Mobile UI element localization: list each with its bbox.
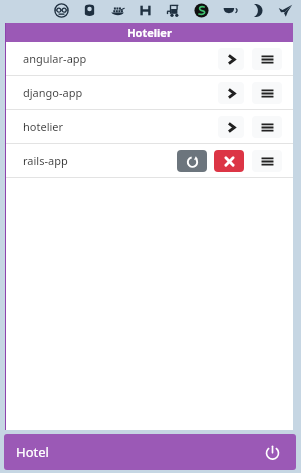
button[interactable]: Power off: [260, 440, 284, 464]
button[interactable]: Spotify: [187, 0, 215, 21]
button[interactable]: Start: [218, 116, 244, 138]
button[interactable]: Stop: [214, 150, 244, 172]
button[interactable]: django-app: [5, 76, 293, 109]
button[interactable]: Menu: [252, 150, 282, 172]
button[interactable]: Start: [218, 48, 244, 70]
staticText: rails-app: [23, 153, 68, 168]
staticText: Hotelier: [127, 25, 172, 40]
button[interactable]: Forklift: [159, 0, 187, 21]
button[interactable]: Restart: [177, 150, 207, 172]
button[interactable]: Menu: [252, 48, 282, 70]
button[interactable]: Bitbucket: [75, 0, 103, 21]
button[interactable]: Menu: [252, 116, 282, 138]
button[interactable]: Start: [218, 82, 244, 104]
button[interactable]: Hotelier: [131, 0, 159, 21]
button[interactable]: Coffee: [215, 0, 243, 21]
button[interactable]: angular-app: [5, 42, 293, 75]
button[interactable]: hotelier: [5, 110, 293, 143]
button[interactable]: Dropbox: [47, 0, 75, 21]
staticText: Hotel: [16, 443, 49, 461]
staticText: django-app: [23, 85, 83, 100]
button[interactable]: rails-app: [5, 144, 293, 177]
button[interactable]: Plane: [271, 0, 299, 21]
staticText: angular-app: [23, 51, 87, 66]
button[interactable]: Menu: [252, 82, 282, 104]
staticText: hotelier: [23, 119, 64, 134]
button[interactable]: Docker: [103, 0, 131, 21]
button[interactable]: Moon: [243, 0, 271, 21]
